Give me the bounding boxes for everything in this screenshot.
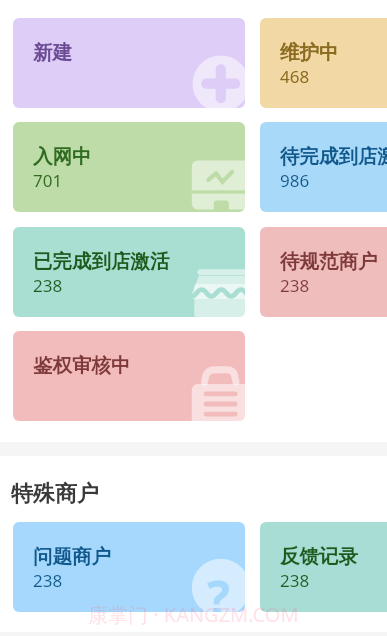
staticText: 反馈记录 xyxy=(280,544,358,569)
staticText: 986 xyxy=(280,169,310,192)
staticText: 康掌门 · KANGZM.COM xyxy=(88,601,299,628)
staticText: 待规范商户 xyxy=(280,249,378,274)
button[interactable]: 入网中 xyxy=(13,122,245,212)
staticText: 待完成到店激活 xyxy=(280,144,387,169)
staticText: 已完成到店激活 xyxy=(33,249,170,274)
staticText: 238 xyxy=(33,274,63,297)
staticText: ? xyxy=(207,565,230,612)
button[interactable]: 维护中 xyxy=(260,18,387,108)
button[interactable]: 新建 xyxy=(13,18,245,108)
staticText: 701 xyxy=(33,169,63,192)
button[interactable]: ? xyxy=(13,522,245,612)
staticText: 特殊商户 xyxy=(11,480,99,508)
staticText: 鉴权审核中 xyxy=(33,353,131,378)
button[interactable]: 反馈记录 xyxy=(260,522,387,612)
staticText: 问题商户 xyxy=(33,544,111,569)
button[interactable]: 待完成到店激活 xyxy=(260,122,387,212)
staticText: 新建 xyxy=(33,40,72,65)
staticText: 入网中 xyxy=(33,144,92,169)
button[interactable]: 鉴权审核中 xyxy=(13,331,245,421)
button[interactable]: 已完成到店激活 xyxy=(13,227,245,317)
staticText: 238 xyxy=(280,274,310,297)
staticText: 238 xyxy=(33,569,63,592)
staticText: 238 xyxy=(280,569,310,592)
button[interactable]: 待规范商户 xyxy=(260,227,387,317)
staticText: 468 xyxy=(280,65,310,88)
staticText: 维护中 xyxy=(280,40,339,65)
